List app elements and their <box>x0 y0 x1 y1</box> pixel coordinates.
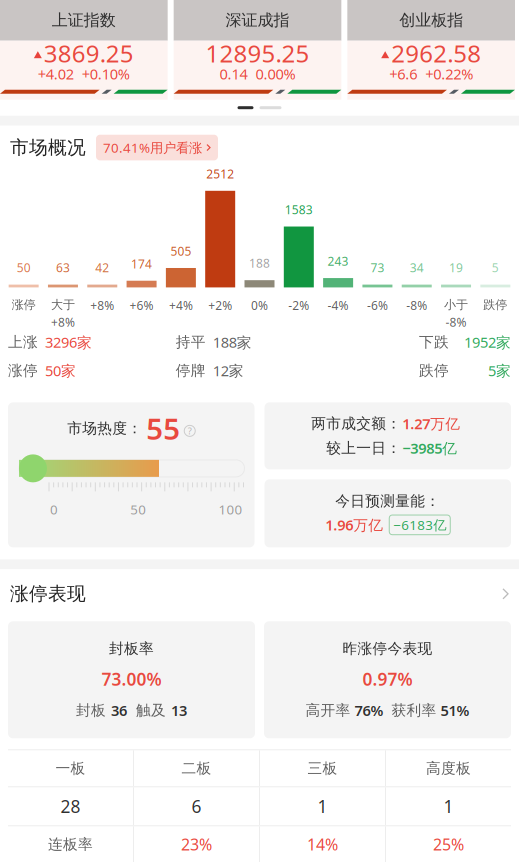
button[interactable]: 创业板指 <box>347 0 515 100</box>
staticText: +4.02 <box>38 64 74 83</box>
staticText: 连板率 <box>48 835 93 853</box>
staticText: 上证指数 <box>52 10 116 30</box>
staticText: 涨停 <box>8 362 38 380</box>
staticText: +6% <box>130 297 154 313</box>
staticText: +6.6 <box>389 64 417 83</box>
staticText: -2% <box>288 297 309 313</box>
staticText: 50 <box>17 260 31 276</box>
staticText: 76% <box>354 701 383 720</box>
staticText: 较上一日： <box>326 439 401 457</box>
staticText: -6% <box>367 297 388 313</box>
staticText: 36 <box>111 701 127 720</box>
staticText: +0.22% <box>425 64 473 83</box>
staticText: 50 <box>130 500 146 518</box>
staticText: 1.27万亿 <box>402 414 460 433</box>
staticText: 1583 <box>285 202 313 217</box>
staticText: 51% <box>440 701 469 720</box>
staticText: 高开率 <box>305 701 350 719</box>
staticText: 深证成指 <box>225 10 289 30</box>
staticText: 3869.25 <box>44 37 134 69</box>
staticText: 获利率 <box>387 701 436 719</box>
staticText: 市场概况 <box>10 136 86 159</box>
staticText: 封板率 <box>109 639 154 657</box>
staticText: 34 <box>410 260 424 276</box>
staticText: 73.00% <box>101 668 161 691</box>
staticText: +8% <box>51 314 75 330</box>
button[interactable]: 70.41%用户看涨 <box>96 135 218 160</box>
staticText: 0.00% <box>255 64 295 83</box>
staticText: 5家 <box>488 361 511 380</box>
staticText: +2% <box>208 297 232 313</box>
staticText: 0% <box>251 297 268 313</box>
staticText: 5 <box>492 260 499 276</box>
staticText: 70.41%用户看涨 <box>103 139 202 156</box>
staticText: 12895.25 <box>205 37 309 69</box>
button[interactable]: 深证成指 <box>174 0 341 100</box>
staticText: 小于 <box>444 297 468 312</box>
staticText: 1952家 <box>464 332 511 352</box>
staticText: −3985亿 <box>402 438 457 458</box>
staticText: 1 <box>443 795 453 818</box>
staticText: −6183亿 <box>393 516 446 534</box>
staticText: 大于 <box>51 297 75 312</box>
staticText: 封板 <box>76 701 106 719</box>
staticText: 下跌 <box>419 333 449 351</box>
staticText: 174 <box>131 256 152 272</box>
staticText: 6 <box>191 795 201 818</box>
staticText: 涨停 <box>12 297 36 312</box>
staticText: 高度板 <box>426 759 471 777</box>
staticText: 跌停 <box>483 297 507 312</box>
staticText: 50家 <box>45 361 76 380</box>
staticText: 0 <box>50 500 58 518</box>
staticText: -8% <box>445 314 466 330</box>
staticText: 1.96万亿 <box>325 515 383 535</box>
staticText: 243 <box>328 253 349 269</box>
staticText: +4% <box>169 297 193 313</box>
staticText: 23% <box>181 834 212 855</box>
button[interactable]: 涨停表现 <box>0 569 519 621</box>
staticText: 跌停 <box>419 362 449 380</box>
staticText: 55 <box>146 409 180 448</box>
staticText: 涨停表现 <box>10 582 86 605</box>
staticText: 3296家 <box>45 332 92 352</box>
staticText: 42 <box>95 260 109 276</box>
staticText: 14% <box>307 834 338 855</box>
staticText: 二板 <box>181 759 211 777</box>
staticText: +8% <box>90 297 114 313</box>
staticText: 一板 <box>55 759 85 777</box>
staticText: 触及 <box>132 701 166 719</box>
staticText: 昨涨停今表现 <box>342 639 432 657</box>
staticText: 市场热度： <box>67 419 142 437</box>
staticText: 停牌 <box>176 362 206 380</box>
staticText: -8% <box>406 297 427 313</box>
staticText: 12家 <box>213 361 244 380</box>
staticText: 188 <box>249 255 270 271</box>
staticText: -4% <box>328 297 349 313</box>
staticText: 13 <box>171 701 187 720</box>
staticText: 63 <box>56 260 70 276</box>
staticText: 19 <box>449 260 463 276</box>
staticText: 1 <box>317 795 327 818</box>
staticText: 今日预测量能： <box>335 492 440 510</box>
staticText: 两市成交额： <box>311 415 401 433</box>
staticText: 上涨 <box>8 333 38 351</box>
staticText: 0.14 <box>219 64 247 83</box>
staticText: 25% <box>433 834 464 855</box>
staticText: 三板 <box>307 759 337 777</box>
staticText: +0.10% <box>82 64 130 83</box>
staticText: 100 <box>218 500 242 518</box>
button[interactable]: 上证指数 <box>0 0 168 100</box>
staticText: 188家 <box>213 332 252 352</box>
staticText: 持平 <box>176 333 206 351</box>
staticText: ? <box>188 425 192 437</box>
staticText: 505 <box>170 243 191 259</box>
staticText: 2512 <box>206 166 234 182</box>
staticText: 28 <box>60 795 80 818</box>
staticText: 2962.58 <box>391 37 481 69</box>
staticText: 73 <box>370 260 384 276</box>
staticText: 创业板指 <box>399 10 463 30</box>
staticText: 0.97% <box>362 668 412 691</box>
